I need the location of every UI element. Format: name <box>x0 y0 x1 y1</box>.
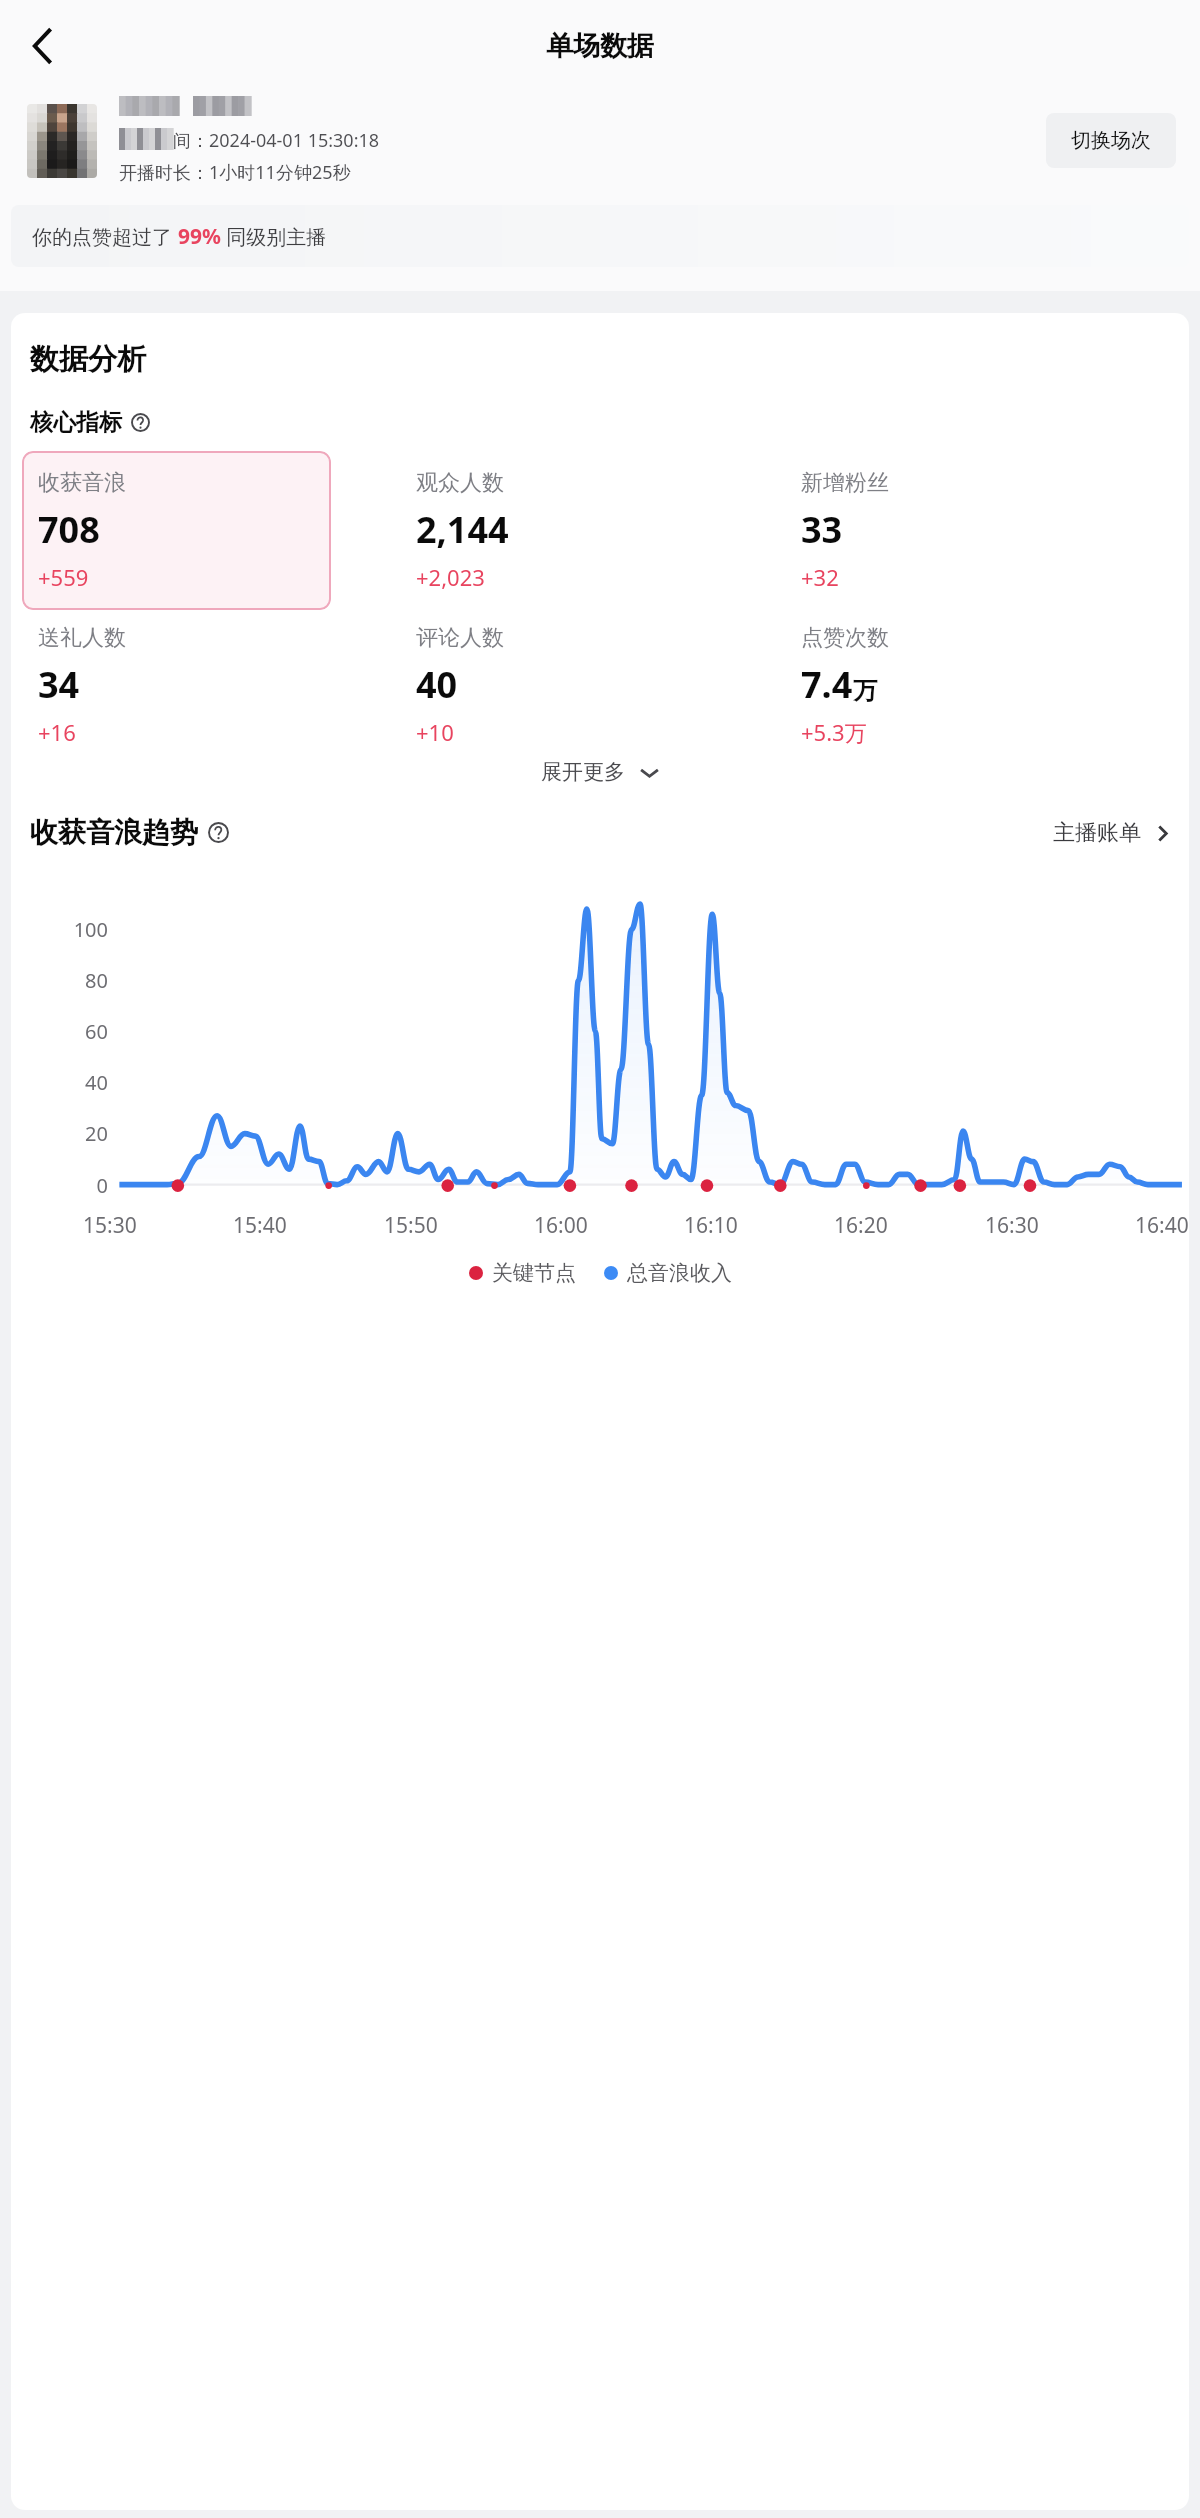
staticText: 关键节点 <box>492 1260 576 1286</box>
staticText: 收获音浪趋势 <box>30 815 198 850</box>
staticText: +2,023 <box>416 562 485 592</box>
staticText: 80 <box>85 967 108 994</box>
staticText: 100 <box>73 916 108 943</box>
staticText: 同级别主播 <box>221 223 327 250</box>
staticText: 你的点赞超过了 <box>32 223 178 250</box>
staticText: 20 <box>85 1120 108 1147</box>
staticText: 16:10 <box>684 1211 738 1240</box>
button[interactable]: 收获音浪 <box>22 451 331 610</box>
staticText: 送礼人数 <box>38 624 126 652</box>
staticText: 708 <box>38 505 100 554</box>
button[interactable]: 评论人数 <box>408 624 793 747</box>
staticText: 34 <box>38 660 80 709</box>
staticText: +16 <box>38 717 76 747</box>
button[interactable]: Back <box>12 17 70 75</box>
staticText: +10 <box>416 717 454 747</box>
staticText: 收获音浪 <box>38 469 126 497</box>
staticText: 15:40 <box>233 1211 287 1240</box>
staticText: 15:50 <box>384 1211 438 1240</box>
button[interactable]: 切换场次 <box>1046 113 1176 168</box>
staticText: +32 <box>801 562 839 592</box>
staticText: 15:30 <box>83 1211 137 1240</box>
button[interactable]: 新增粉丝 <box>793 451 1178 592</box>
staticText: 展开更多 <box>541 759 625 785</box>
staticText: 开播时长：1小时11分钟25秒 <box>119 160 351 185</box>
staticText: 16:40 <box>1135 1211 1189 1240</box>
staticText: 开播时间：2024-04-01 15:30:18 <box>119 128 380 153</box>
staticText: +5.3万 <box>801 717 867 747</box>
staticText: 16:30 <box>985 1211 1039 1240</box>
button[interactable]: 主播账单 <box>1053 819 1172 847</box>
staticText: 40 <box>416 660 458 709</box>
staticText: 7.4 <box>801 660 853 709</box>
button[interactable]: 展开更多 <box>11 759 1189 785</box>
button[interactable]: 观众人数 <box>408 451 793 592</box>
staticText: +559 <box>38 562 89 592</box>
staticText: 单场数据 <box>546 29 654 63</box>
staticText: 40 <box>85 1069 108 1096</box>
staticText: 总音浪收入 <box>627 1260 732 1286</box>
staticText: 16:00 <box>534 1211 588 1240</box>
staticText: 60 <box>85 1018 108 1045</box>
staticText: 观众人数 <box>416 469 504 497</box>
staticText: 主播账单 <box>1053 819 1141 847</box>
staticText: 0 <box>96 1172 108 1199</box>
button[interactable]: 送礼人数 <box>22 624 408 747</box>
staticText: 核心指标 <box>30 408 122 437</box>
button[interactable]: 收获音浪趋势 <box>30 815 229 850</box>
staticText: 99% <box>178 222 221 251</box>
staticText: 16:20 <box>834 1211 888 1240</box>
button[interactable]: 你的点赞超过了 <box>11 205 1189 267</box>
staticText: 万 <box>853 676 877 706</box>
staticText: 切换场次 <box>1071 128 1151 153</box>
staticText: 点赞次数 <box>801 624 889 652</box>
staticText: 数据分析 <box>30 341 146 378</box>
staticText: 新增粉丝 <box>801 469 889 497</box>
button[interactable]: 点赞次数 <box>793 624 1178 747</box>
staticText: 2,144 <box>416 505 509 554</box>
staticText: 评论人数 <box>416 624 504 652</box>
button[interactable]: 核心指标 <box>30 408 150 437</box>
staticText: 33 <box>801 505 843 554</box>
